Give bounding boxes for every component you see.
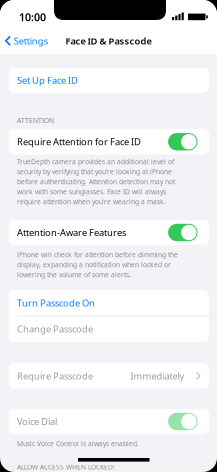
- staticText: Change Passcode: [17, 323, 93, 335]
- staticText: before authenticating. Attention detecti…: [17, 177, 175, 186]
- button[interactable]: Require Attention for Face ID: [168, 133, 198, 150]
- button[interactable]: Change Passcode: [8, 316, 209, 342]
- button[interactable]: Set Up Face ID: [8, 68, 209, 92]
- staticText: ATTENTION: [17, 116, 54, 125]
- staticText: iPhone will check for attention before d…: [17, 250, 178, 259]
- button[interactable]: Require Passcode: [8, 363, 209, 389]
- staticText: Attention-Aware Features: [17, 226, 126, 239]
- staticText: Settings: [14, 35, 48, 47]
- button[interactable]: Attention-Aware Features: [168, 224, 198, 241]
- button[interactable]: Back to Settings: [0, 28, 60, 54]
- staticText: Voice Dial: [17, 415, 57, 428]
- staticText: Immediately: [130, 370, 184, 382]
- staticText: Set Up Face ID: [17, 74, 78, 86]
- button[interactable]: Turn Passcode On: [8, 290, 209, 316]
- staticText: TrueDepth camera provides an additional …: [17, 157, 174, 166]
- staticText: ALLOW ACCESS WHEN LOCKED:: [17, 463, 115, 471]
- staticText: display, expanding a notification when l…: [17, 260, 171, 269]
- staticText: 10:00: [19, 10, 46, 24]
- button[interactable]: Voice Dial: [168, 413, 198, 430]
- staticText: Require Attention for Face ID: [17, 136, 141, 148]
- staticText: require attention when you're wearing a …: [17, 197, 166, 206]
- staticText: Face ID & Passcode: [65, 35, 151, 47]
- staticText: Require Passcode: [17, 370, 93, 382]
- staticText: work with some sunglasses. Face ID will …: [17, 187, 166, 196]
- staticText: security by verifying that you're lookin…: [17, 167, 172, 176]
- staticText: lowering the volume of some alerts.: [17, 270, 131, 279]
- staticText: Turn Passcode On: [17, 297, 95, 309]
- staticText: Music Voice Control is always enabled.: [17, 439, 139, 448]
